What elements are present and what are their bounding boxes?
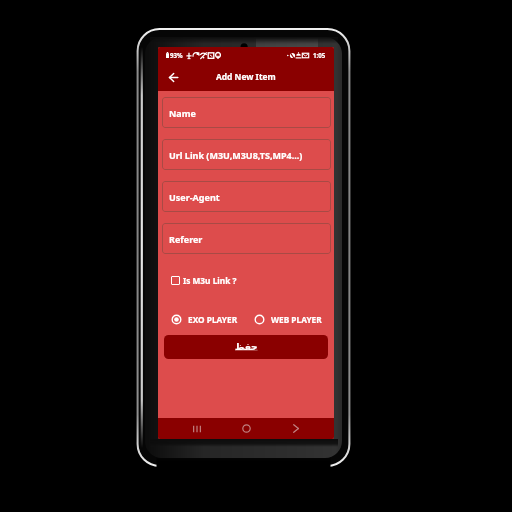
staticText: Referer [169, 233, 203, 245]
button[interactable]: Url Link (M3U,M3U8,TS,MP4...) [162, 139, 331, 170]
staticText: 93% [170, 51, 183, 59]
staticText: حفظ [235, 342, 258, 352]
button[interactable]: EXO PLAYER [171, 314, 238, 325]
button[interactable]: User-Agent [162, 181, 331, 212]
button[interactable]: Back [285, 418, 307, 439]
staticText: Url Link (M3U,M3U8,TS,MP4...) [169, 149, 303, 161]
staticText: Add New Item [216, 71, 276, 82]
staticText: 1:05 [313, 51, 326, 59]
button[interactable]: WEB PLAYER [254, 314, 322, 325]
staticText: Name [169, 107, 196, 119]
button[interactable]: Back [163, 67, 183, 87]
button[interactable]: Recent apps [186, 418, 208, 439]
button[interactable]: Home [235, 418, 257, 439]
button[interactable]: Name [162, 97, 331, 128]
staticText: EXO PLAYER [188, 314, 238, 325]
button[interactable]: Referer [162, 223, 331, 254]
button[interactable]: حفظ [164, 335, 328, 359]
staticText: User-Agent [169, 191, 220, 203]
staticText: WEB PLAYER [271, 314, 322, 325]
staticText: Is M3u Link ? [183, 275, 237, 286]
button[interactable]: Is M3u Link ? [171, 275, 237, 286]
